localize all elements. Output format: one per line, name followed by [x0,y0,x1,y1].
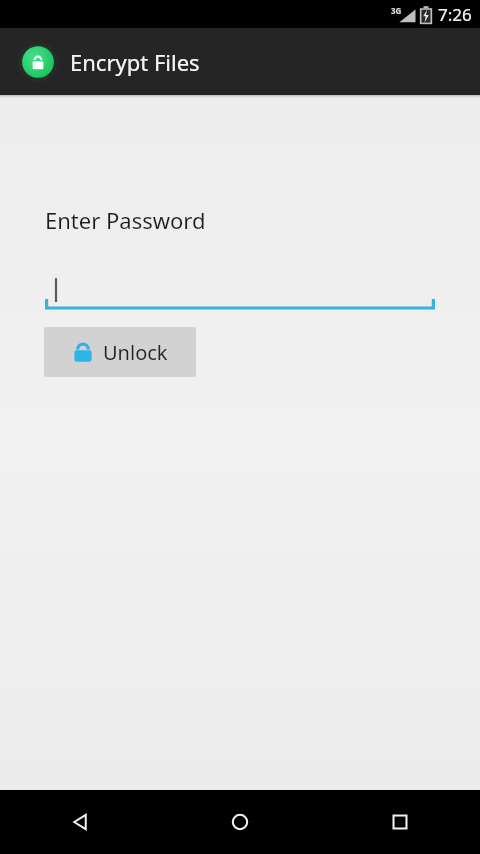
button[interactable]: Back [0,790,160,854]
button[interactable]: Recent apps [320,790,480,854]
button[interactable]: Password input field [45,271,435,311]
staticText: Encrypt Files [70,47,200,77]
staticText: 7:26 [438,3,472,26]
staticText: Enter Password [45,205,206,235]
button[interactable]: Unlock [44,327,196,377]
button[interactable]: Home [160,790,320,854]
staticText: 3G [391,5,402,16]
staticText: Unlock [103,339,168,366]
